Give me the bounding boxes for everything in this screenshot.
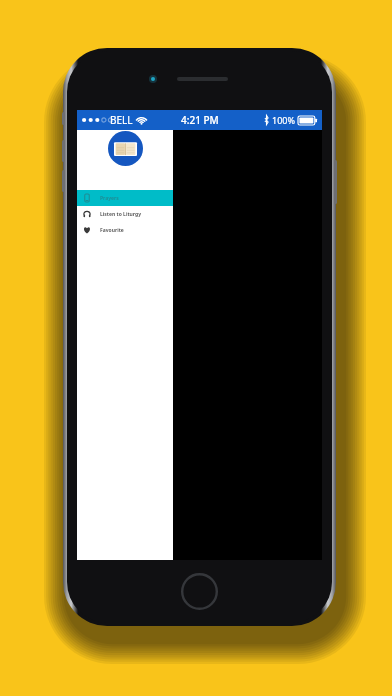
other: Prayers xyxy=(83,194,91,202)
button[interactable]: Prayers xyxy=(77,190,173,206)
staticText: 4:21 PM xyxy=(181,113,219,127)
staticText: BELL xyxy=(110,113,133,127)
staticText: Prayers xyxy=(100,195,119,202)
staticText: Listen to Liturgy xyxy=(100,211,142,218)
staticText: 100% xyxy=(272,114,295,126)
button[interactable]: Listen to Liturgy xyxy=(77,206,173,222)
other: Favourite xyxy=(83,226,91,234)
other: Listen to Liturgy xyxy=(83,210,91,218)
staticText: Favourite xyxy=(100,227,124,234)
button[interactable]: Favourite xyxy=(77,222,173,238)
button[interactable] xyxy=(77,130,173,188)
